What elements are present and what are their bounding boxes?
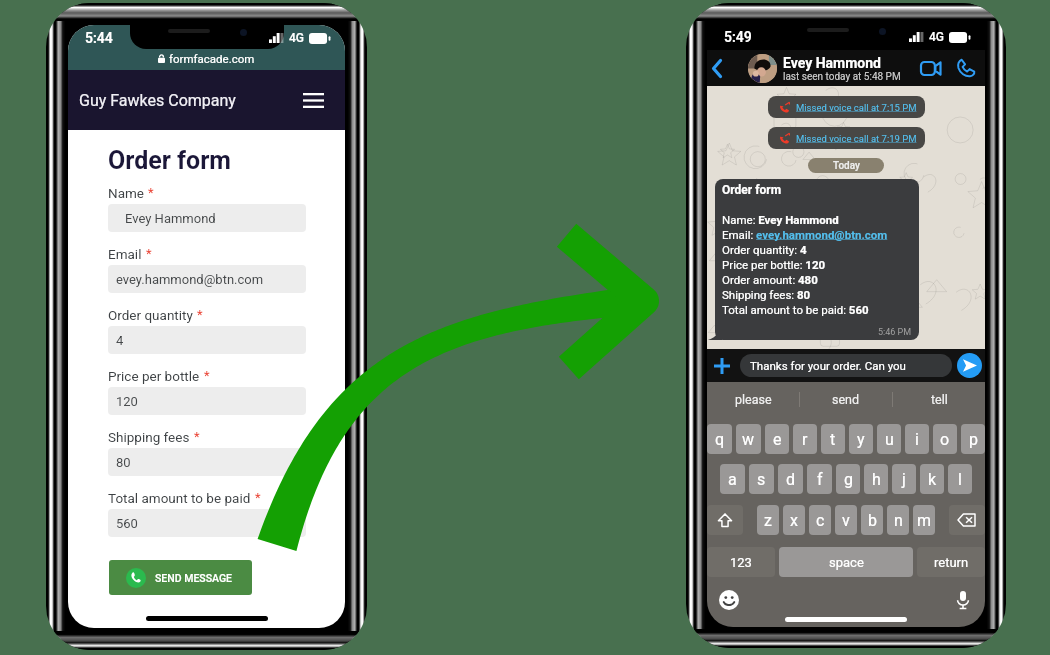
button[interactable]: z [757, 505, 779, 535]
staticText: 120 [116, 394, 138, 409]
button[interactable]: Order form [715, 179, 919, 340]
button[interactable]: e [765, 424, 789, 454]
staticText: * [204, 368, 210, 383]
button[interactable]: 123 [707, 547, 775, 577]
button[interactable]: Guy Fawkes Company [68, 70, 345, 130]
button[interactable]: Backspace [949, 505, 985, 535]
staticText: q [715, 430, 725, 449]
staticText: * [148, 185, 154, 200]
staticText: n [894, 511, 903, 530]
button[interactable]: v [835, 505, 857, 535]
button[interactable]: w [736, 424, 761, 454]
button[interactable]: y [849, 424, 873, 454]
staticText: Order quantity [108, 307, 193, 323]
button[interactable]: space [779, 547, 913, 577]
button[interactable]: Missed voice call at 7:19 PM [768, 127, 925, 149]
button[interactable]: tell [893, 382, 985, 417]
button[interactable]: return [917, 547, 985, 577]
button[interactable]: 4 [108, 326, 306, 354]
staticText: 4 [116, 333, 124, 348]
button[interactable]: p [961, 424, 985, 454]
button[interactable]: Menu [300, 87, 326, 113]
staticText: Price per bottle [108, 368, 200, 384]
staticText: formfacade.com [169, 52, 255, 65]
button[interactable]: please [707, 382, 799, 417]
button[interactable]: j [892, 464, 916, 494]
button[interactable]: t [821, 424, 845, 454]
button[interactable]: r [793, 424, 817, 454]
staticText: k [928, 470, 937, 489]
button[interactable]: x [783, 505, 805, 535]
staticText: Missed voice call at 7:19 PM [796, 133, 917, 144]
staticText: p [969, 430, 978, 449]
button[interactable]: Microphone [953, 590, 973, 610]
staticText: Shipping fees [108, 429, 190, 445]
staticText: Evey Hammond [783, 55, 881, 71]
staticText: please [735, 392, 772, 407]
staticText: 5:44 [85, 30, 113, 46]
staticText: Total amount to be paid [108, 490, 251, 506]
button[interactable]: Send [957, 353, 982, 378]
staticText: t [830, 430, 836, 449]
staticText: 560 [116, 516, 138, 531]
button[interactable]: Evey Hammond [108, 204, 306, 232]
button[interactable]: m [913, 505, 935, 535]
button[interactable]: SEND MESSAGE [109, 560, 252, 595]
staticText: * [194, 429, 200, 444]
button[interactable]: 120 [108, 387, 306, 415]
staticText: x [790, 511, 798, 530]
staticText: Order form [108, 146, 231, 175]
staticText: e [773, 430, 782, 449]
button[interactable]: q [707, 424, 732, 454]
staticText: m [917, 511, 932, 530]
staticText: Email [108, 246, 142, 262]
staticText: b [868, 511, 877, 530]
button[interactable]: 560 [108, 509, 306, 537]
staticText: Guy Fawkes Company [79, 91, 236, 110]
staticText: 5:49 [724, 29, 752, 45]
staticText: 4G [289, 31, 304, 45]
staticText: y [857, 430, 865, 449]
button[interactable]: k [920, 464, 944, 494]
staticText: a [728, 470, 737, 489]
button[interactable]: b [861, 505, 883, 535]
button[interactable]: Attach [711, 349, 733, 382]
staticText: * [255, 490, 261, 505]
button[interactable]: Back [707, 50, 727, 86]
staticText: v [842, 511, 850, 530]
button[interactable]: send [800, 382, 892, 417]
button[interactable]: Voice call [952, 50, 979, 86]
staticText: 123 [730, 555, 752, 570]
button[interactable]: Thanks for your order. Can you [740, 354, 952, 377]
button[interactable]: Missed voice call at 7:15 PM [768, 96, 925, 118]
button[interactable]: a [720, 464, 745, 494]
button[interactable]: o [933, 424, 957, 454]
button[interactable]: evey.hammond@btn.com [108, 265, 306, 293]
staticText: w [742, 430, 755, 449]
button[interactable]: s [749, 464, 774, 494]
button[interactable]: g [836, 464, 860, 494]
staticText: Today [833, 160, 860, 172]
button[interactable]: l [948, 464, 972, 494]
staticText: i [915, 430, 919, 449]
staticText: l [958, 470, 962, 489]
button[interactable]: d [778, 464, 803, 494]
staticText: last seen today at 5:48 PM [783, 71, 901, 83]
button[interactable]: u [877, 424, 901, 454]
staticText: Name [108, 185, 144, 201]
button[interactable]: i [905, 424, 929, 454]
staticText: SEND MESSAGE [155, 572, 233, 584]
button[interactable]: Video call [915, 50, 946, 86]
button[interactable]: Emoji [719, 590, 739, 610]
button[interactable]: f [807, 464, 832, 494]
button[interactable]: h [864, 464, 888, 494]
button[interactable]: 80 [108, 448, 306, 476]
staticText: u [885, 430, 894, 449]
staticText: return [934, 555, 969, 570]
staticText: tell [931, 392, 948, 407]
button[interactable]: n [887, 505, 909, 535]
button[interactable]: Shift [707, 505, 743, 535]
staticText: j [902, 470, 906, 489]
staticText: h [872, 470, 881, 489]
button[interactable]: c [809, 505, 831, 535]
